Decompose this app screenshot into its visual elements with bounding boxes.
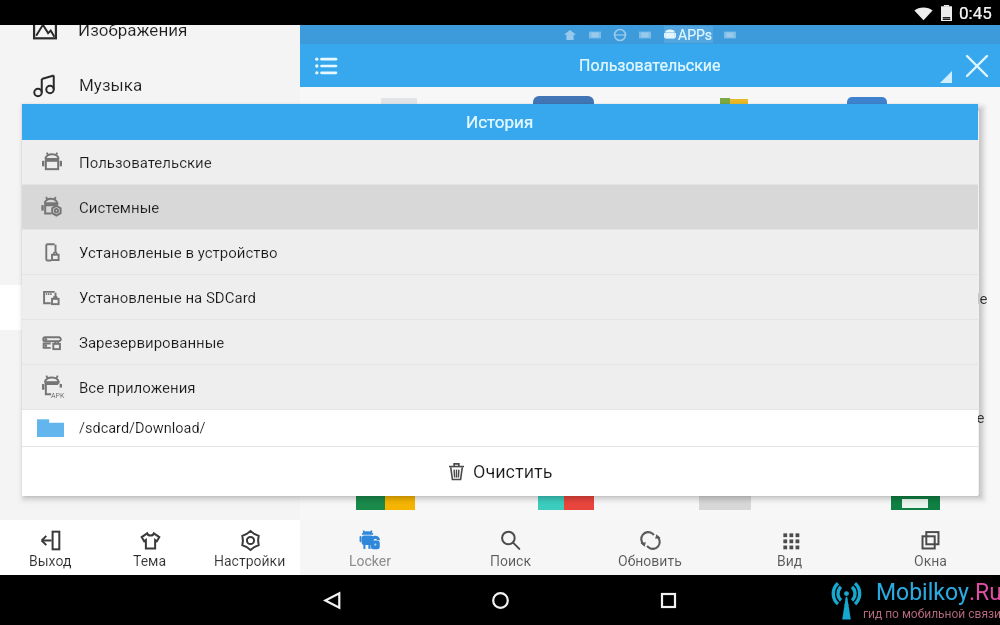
staticText: Выход (29, 553, 72, 569)
staticText: Видео (78, 140, 128, 160)
staticText: APPs (678, 27, 713, 43)
staticText: Настройки (214, 553, 286, 569)
button[interactable]: Приложения (0, 352, 300, 388)
staticText: Пользовательские (579, 56, 721, 75)
staticText: Пользовательские (79, 154, 212, 172)
staticText: Системные (79, 199, 160, 217)
staticText: .Ru (969, 579, 1000, 606)
button[interactable]: Документы (0, 187, 300, 223)
button[interactable]: Избранное (0, 407, 300, 443)
button[interactable]: Изображения (0, 12, 300, 48)
button[interactable]: Очистить (22, 447, 978, 495)
button[interactable]: Locker (300, 520, 440, 575)
button[interactable]: Настройки (200, 520, 300, 575)
staticText: APK (51, 392, 65, 400)
button[interactable]: /sdcard/Download/ (22, 410, 978, 447)
staticText: Google (940, 290, 988, 308)
button[interactable]: Close (960, 49, 994, 83)
staticText: Изображения (78, 20, 188, 40)
button[interactable]: Тема (100, 520, 200, 575)
staticText: /sdcard/Download/ (79, 420, 206, 437)
staticText: Locker (349, 553, 391, 569)
staticText: Все приложения (79, 379, 196, 397)
staticText: Поиск (490, 553, 531, 569)
button[interactable]: Установленые на SDCard (22, 275, 978, 320)
staticText: Очистить (473, 461, 553, 482)
button[interactable]: Tab (564, 29, 576, 41)
button[interactable]: Back (310, 578, 354, 622)
button[interactable]: Tab (614, 29, 626, 41)
button[interactable]: Скачанные (0, 297, 300, 333)
button[interactable]: APK (22, 365, 978, 410)
button[interactable]: Menu (308, 49, 342, 83)
staticText: Документы (78, 195, 171, 215)
staticText: гид по мобильной связи (863, 607, 1000, 621)
button[interactable]: Home (478, 578, 522, 622)
staticText: Установленые на SDCard (79, 289, 257, 307)
staticText: Музыка (79, 75, 143, 95)
button[interactable]: Tab (589, 29, 601, 41)
button[interactable]: Tab (639, 29, 651, 41)
button[interactable]: Окна (860, 520, 1000, 575)
staticText: Установленые в устройство (79, 244, 278, 262)
button[interactable]: Зарезервированные (22, 320, 978, 365)
staticText: Зарезервированные (79, 334, 225, 352)
button[interactable]: Обновить (580, 520, 720, 575)
button[interactable]: Выход (0, 520, 100, 575)
button[interactable]: Музыка (0, 67, 300, 103)
staticText: 0:45 (959, 3, 992, 23)
button[interactable]: Поиск (440, 520, 580, 575)
staticText: Избранное (78, 415, 166, 435)
staticText: Архивы (78, 250, 140, 270)
button[interactable]: Системные (22, 185, 978, 230)
button[interactable]: Корзина (0, 462, 300, 498)
button[interactable]: Вид (720, 520, 860, 575)
button[interactable]: Установленые в устройство (22, 230, 978, 275)
staticText: Mobilkoy (876, 579, 969, 606)
staticText: Вид (777, 553, 803, 569)
button[interactable]: Recents (646, 578, 690, 622)
button[interactable]: Tab (724, 29, 736, 41)
staticText: Окна (914, 553, 947, 569)
staticText: Google (937, 409, 985, 427)
button[interactable]: APPs (664, 26, 713, 43)
staticText: Тема (133, 553, 167, 569)
button[interactable]: Пользовательские (22, 140, 978, 185)
button[interactable]: Видео (0, 132, 300, 168)
staticText: Обновить (618, 553, 682, 569)
button[interactable]: Архивы (0, 242, 300, 278)
staticText: История (466, 112, 534, 132)
